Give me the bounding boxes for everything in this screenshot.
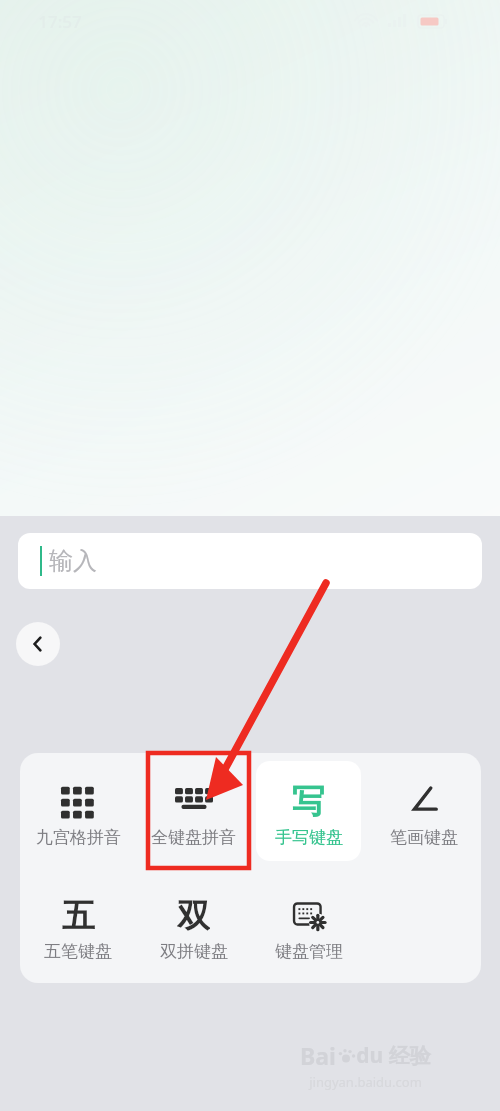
staticText: 笔画键盘 [390, 827, 458, 848]
button[interactable]: 笔画键盘 [371, 761, 476, 861]
staticText: 全键盘拼音 [151, 827, 236, 848]
staticText: 写 [292, 781, 325, 821]
staticText: 五笔键盘 [44, 941, 112, 962]
staticText: jingyan.baidu.com [309, 1073, 422, 1091]
staticText: 九宫格拼音 [36, 827, 121, 848]
button[interactable]: 九宫格拼音 [25, 761, 131, 861]
staticText: du 经验 [356, 1041, 431, 1070]
staticText: 双 [177, 895, 210, 935]
staticText: 键盘管理 [275, 941, 343, 962]
staticText: Bai [300, 1040, 336, 1071]
button[interactable]: 键盘管理 [256, 875, 361, 975]
staticText: 五 [62, 895, 95, 935]
staticText: 手写键盘 [275, 827, 343, 848]
button[interactable]: 输入 [18, 533, 482, 589]
button[interactable]: 五 [25, 875, 131, 975]
button[interactable]: 写 [256, 761, 361, 861]
staticText: 输入 [49, 546, 97, 576]
button[interactable]: 双 [141, 875, 246, 975]
button[interactable]: 返回 [16, 622, 60, 666]
button[interactable]: 全键盘拼音 [141, 761, 246, 861]
staticText: 双拼键盘 [160, 941, 228, 962]
